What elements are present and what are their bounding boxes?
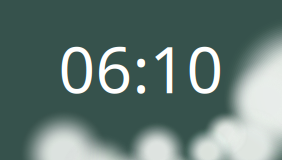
staticText: 06:10 xyxy=(58,26,223,111)
